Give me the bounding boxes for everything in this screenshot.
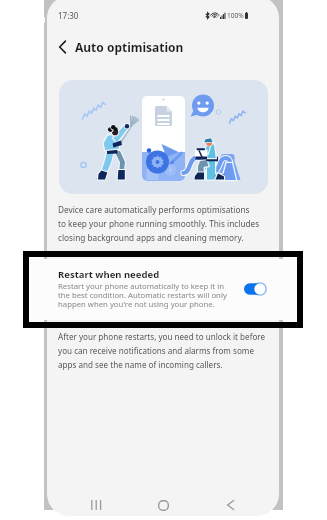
button[interactable]: Recent apps	[81, 492, 111, 516]
staticText: Device care automatically performs optim…	[58, 204, 260, 243]
staticText: Auto optimisation	[75, 39, 184, 55]
staticText: Restart your phone automatically to keep…	[58, 281, 227, 309]
staticText: After your phone restarts, you need to u…	[58, 331, 266, 370]
staticText: Restart when needed	[58, 268, 160, 281]
button[interactable]: Home	[148, 492, 178, 516]
button[interactable]: Back	[215, 492, 245, 516]
staticText: 100%	[227, 11, 244, 20]
staticText: 17:30	[58, 10, 79, 21]
button[interactable]: Restart when needed	[29, 259, 297, 320]
other: Back	[53, 38, 71, 56]
button[interactable]: Back	[53, 36, 184, 58]
